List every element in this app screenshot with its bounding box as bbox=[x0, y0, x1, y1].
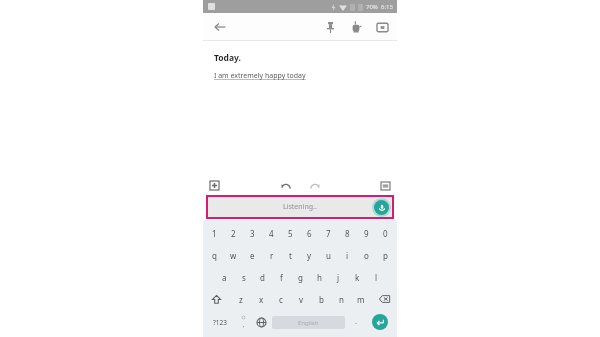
button[interactable]: u bbox=[319, 244, 338, 266]
button[interactable]: n bbox=[331, 288, 351, 310]
staticText: d bbox=[260, 272, 265, 283]
staticText: i bbox=[346, 250, 349, 261]
button[interactable]: Microphone bbox=[372, 198, 391, 217]
staticText: 3 bbox=[250, 228, 255, 239]
staticText: b bbox=[319, 294, 324, 305]
button[interactable]: Pin bbox=[322, 19, 338, 35]
staticText: y bbox=[307, 250, 312, 261]
button[interactable]: . bbox=[347, 310, 365, 334]
button[interactable]: Backspace bbox=[371, 288, 397, 310]
staticText: z bbox=[239, 294, 243, 305]
staticText: w bbox=[230, 250, 237, 261]
staticText: p bbox=[383, 250, 388, 261]
button[interactable]: s bbox=[234, 266, 253, 288]
button[interactable]: w bbox=[224, 244, 243, 266]
button[interactable]: 6 bbox=[300, 223, 319, 244]
button[interactable]: g bbox=[291, 266, 310, 288]
button[interactable]: q bbox=[205, 244, 224, 266]
button[interactable]: More options bbox=[379, 179, 392, 192]
button[interactable]: m bbox=[351, 288, 371, 310]
button[interactable]: a bbox=[214, 266, 234, 288]
button[interactable]: 0 bbox=[376, 223, 395, 244]
button[interactable]: i bbox=[338, 244, 357, 266]
button[interactable]: f bbox=[272, 266, 291, 288]
button[interactable]: x bbox=[251, 288, 271, 310]
staticText: Today. bbox=[214, 52, 241, 64]
staticText: a bbox=[222, 272, 227, 283]
staticText: 8 bbox=[345, 228, 350, 239]
staticText: . bbox=[355, 317, 357, 327]
staticText: j bbox=[337, 272, 340, 283]
staticText: q bbox=[212, 250, 217, 261]
staticText: u bbox=[326, 250, 331, 261]
button[interactable]: 4 bbox=[262, 223, 281, 244]
staticText: s bbox=[242, 272, 246, 283]
button[interactable]: Enter bbox=[365, 310, 394, 334]
button[interactable]: c bbox=[271, 288, 291, 310]
staticText: k bbox=[355, 272, 360, 283]
staticText: g bbox=[298, 272, 303, 283]
staticText: v bbox=[299, 294, 304, 305]
button[interactable]: Reminder bbox=[348, 19, 364, 35]
button[interactable]: r bbox=[262, 244, 281, 266]
staticText: t bbox=[289, 250, 292, 261]
staticText: c bbox=[279, 294, 283, 305]
button[interactable]: t bbox=[281, 244, 300, 266]
staticText: 5 bbox=[288, 228, 293, 239]
staticText: l bbox=[375, 272, 378, 283]
button[interactable]: o bbox=[357, 244, 376, 266]
button[interactable]: Undo bbox=[279, 179, 292, 192]
staticText: f bbox=[280, 272, 283, 283]
button[interactable]: j bbox=[329, 266, 348, 288]
staticText: 1 bbox=[212, 228, 217, 239]
staticText: 0 bbox=[383, 228, 388, 239]
button[interactable]: Archive bbox=[374, 19, 390, 35]
button[interactable]: 5 bbox=[281, 223, 300, 244]
staticText: Listening.. bbox=[283, 202, 317, 212]
staticText: n bbox=[339, 294, 344, 305]
button[interactable]: Listening.. bbox=[206, 195, 394, 219]
button[interactable]: e bbox=[243, 244, 262, 266]
staticText: 70% bbox=[366, 3, 378, 11]
staticText: English bbox=[298, 319, 319, 327]
staticText: o bbox=[364, 250, 369, 261]
button[interactable]: z bbox=[230, 288, 251, 310]
button[interactable]: Add bbox=[208, 179, 221, 192]
staticText: 9 bbox=[364, 228, 369, 239]
staticText: 6:15 bbox=[381, 3, 393, 11]
button[interactable]: k bbox=[348, 266, 367, 288]
button[interactable]: b bbox=[311, 288, 331, 310]
button[interactable]: Back bbox=[211, 18, 229, 36]
staticText: 7 bbox=[326, 228, 331, 239]
staticText: e bbox=[250, 250, 255, 261]
staticText: 2 bbox=[231, 228, 236, 239]
staticText: h bbox=[317, 272, 322, 283]
button[interactable]: p bbox=[376, 244, 395, 266]
staticText: r bbox=[270, 250, 274, 261]
staticText: m bbox=[357, 294, 365, 305]
button[interactable]: English bbox=[272, 316, 345, 329]
button[interactable]: 2 bbox=[224, 223, 243, 244]
staticText: I am extremely happy today bbox=[214, 71, 306, 81]
button[interactable]: ?123 bbox=[206, 310, 234, 334]
button[interactable]: d bbox=[253, 266, 272, 288]
staticText: , bbox=[243, 321, 245, 329]
staticText: 6 bbox=[307, 228, 312, 239]
button[interactable]: , bbox=[234, 310, 252, 334]
staticText: x bbox=[259, 294, 264, 305]
staticText: ?123 bbox=[213, 318, 227, 327]
button[interactable]: h bbox=[310, 266, 329, 288]
button[interactable]: v bbox=[291, 288, 311, 310]
button[interactable]: 3 bbox=[243, 223, 262, 244]
button[interactable]: Change language bbox=[252, 310, 270, 334]
button[interactable]: l bbox=[367, 266, 386, 288]
button[interactable]: Shift bbox=[203, 288, 230, 310]
button[interactable]: y bbox=[300, 244, 319, 266]
button[interactable]: 9 bbox=[357, 223, 376, 244]
staticText: 4 bbox=[269, 228, 274, 239]
button[interactable]: 7 bbox=[319, 223, 338, 244]
button[interactable]: 8 bbox=[338, 223, 357, 244]
button[interactable]: 1 bbox=[205, 223, 224, 244]
button[interactable]: Redo bbox=[308, 179, 321, 192]
